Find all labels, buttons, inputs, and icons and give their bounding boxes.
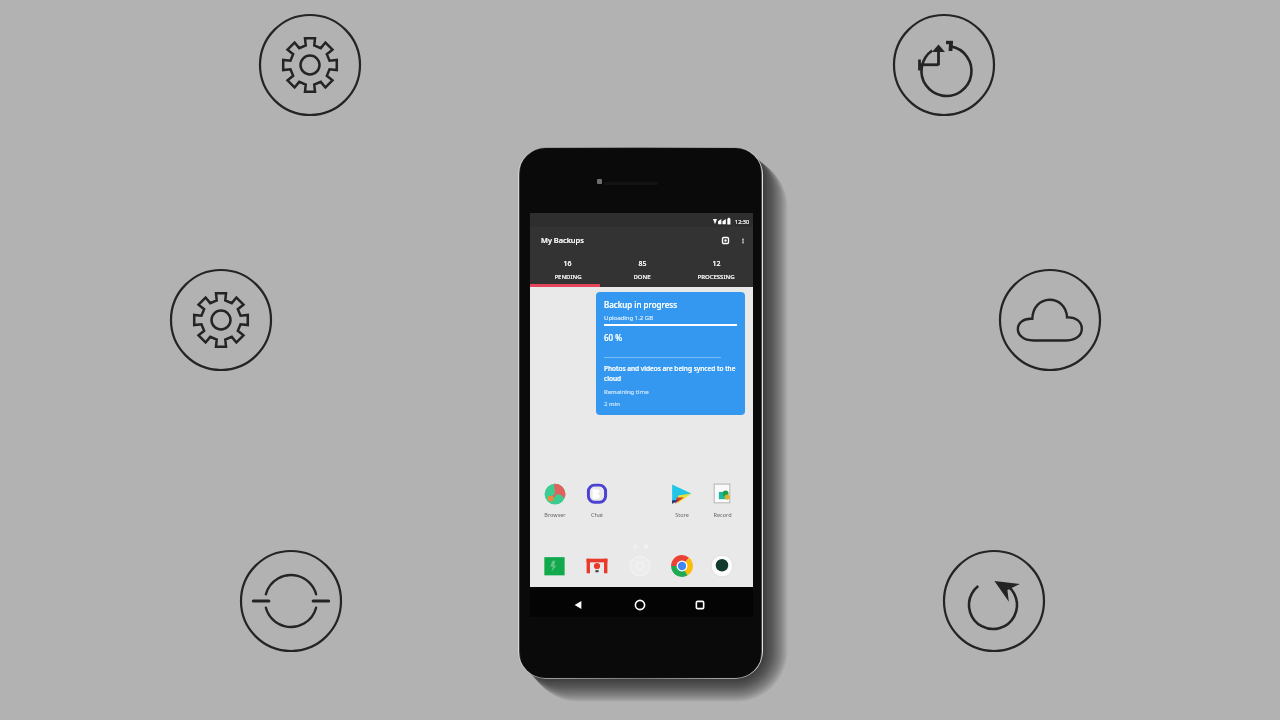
button[interactable]: Chrome bbox=[669, 553, 695, 579]
staticText: 85 bbox=[638, 259, 647, 269]
button[interactable]: Preferences bbox=[167, 266, 275, 374]
button[interactable]: Record bbox=[705, 482, 739, 518]
staticText: Backup in progress bbox=[604, 299, 678, 310]
button[interactable]: Chat bbox=[580, 482, 614, 518]
staticText: PROCESSING bbox=[697, 273, 735, 281]
button[interactable]: 16 bbox=[530, 253, 605, 287]
staticText: Chat bbox=[591, 511, 603, 518]
staticText: 16 bbox=[563, 259, 572, 269]
button[interactable]: 85 bbox=[605, 253, 679, 287]
staticText: PENDING bbox=[554, 273, 582, 281]
button[interactable]: Restore bbox=[940, 547, 1048, 655]
staticText: Remaining time bbox=[604, 388, 649, 396]
staticText: My Backups bbox=[541, 235, 584, 245]
button[interactable]: Sync bbox=[237, 547, 345, 655]
button[interactable]: Backup history bbox=[890, 11, 998, 119]
button[interactable]: Home bbox=[633, 598, 647, 612]
staticText: Uploading 1.2 GB bbox=[604, 314, 654, 322]
button[interactable]: Browser bbox=[538, 482, 572, 518]
button[interactable]: Store bbox=[665, 482, 699, 518]
staticText: 60 % bbox=[604, 332, 623, 343]
button[interactable]: Messages bbox=[584, 553, 610, 579]
staticText: DONE bbox=[633, 273, 651, 281]
button[interactable]: Back bbox=[571, 598, 585, 612]
button[interactable]: Camera bbox=[709, 553, 735, 579]
staticText: 12:30 bbox=[735, 218, 750, 225]
staticText: 2 min bbox=[604, 400, 620, 408]
button[interactable]: More options bbox=[738, 236, 748, 246]
staticText: 12 bbox=[712, 259, 721, 269]
button[interactable]: Settings bbox=[256, 11, 364, 119]
button[interactable]: Phone bbox=[542, 553, 568, 579]
button[interactable]: Cloud storage bbox=[996, 266, 1104, 374]
staticText: Photos and videos are being synced to th… bbox=[604, 364, 737, 383]
staticText: Store bbox=[675, 511, 689, 518]
staticText: Record bbox=[713, 511, 732, 518]
button[interactable]: 12 bbox=[679, 253, 753, 287]
button[interactable]: Recents bbox=[693, 598, 707, 612]
staticText: Browser bbox=[544, 511, 566, 518]
button[interactable]: Storage bbox=[719, 234, 732, 247]
button[interactable]: Backup in progress bbox=[596, 292, 745, 415]
